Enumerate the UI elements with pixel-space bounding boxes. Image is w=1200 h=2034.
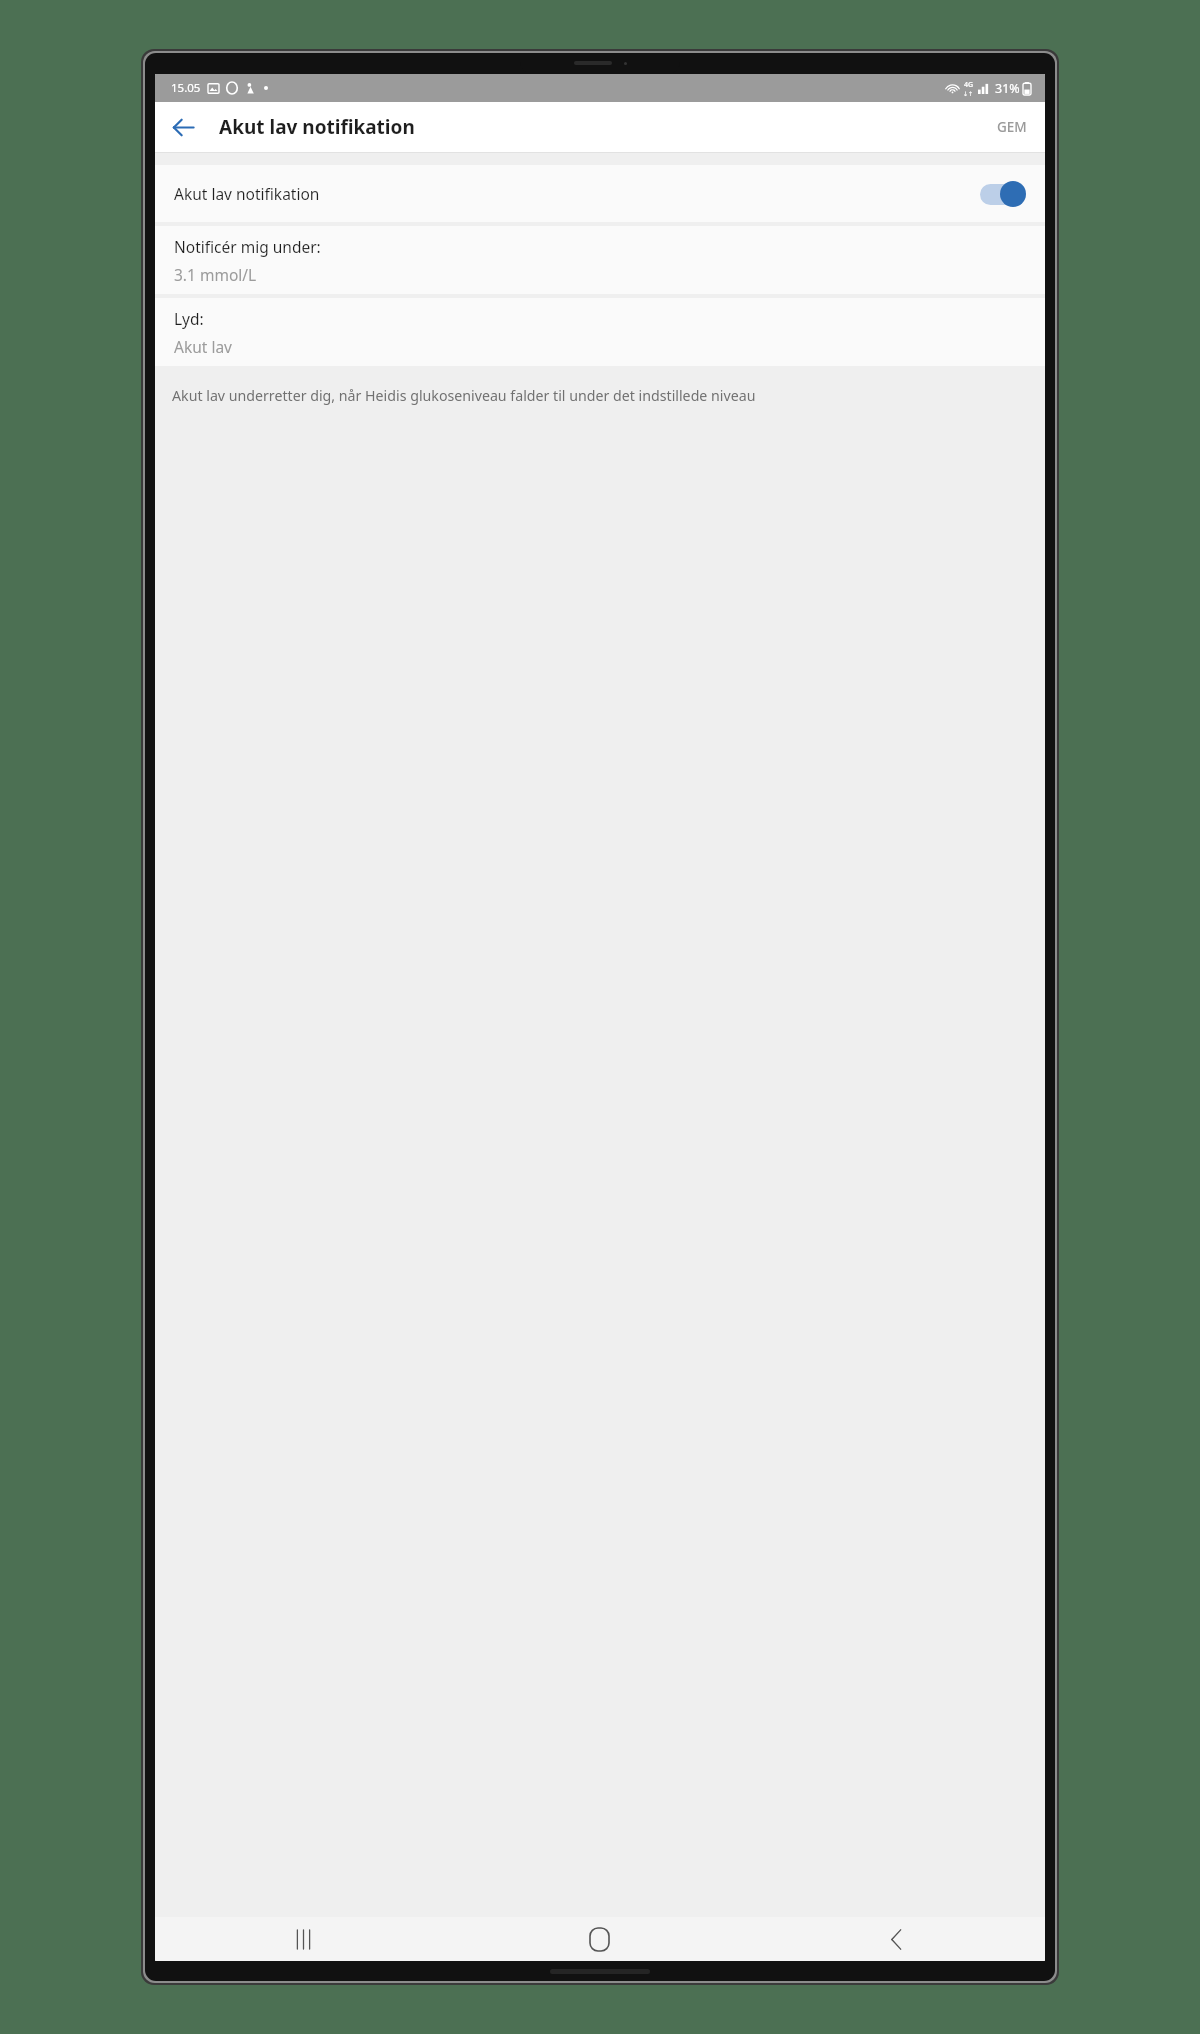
staticText: Notificér mig under:: [174, 236, 321, 257]
staticText: 4G: [964, 80, 974, 90]
staticText: ↓↑: [963, 90, 974, 97]
staticText: Akut lav notifikation: [174, 183, 320, 204]
button[interactable]: Akut lav notifikation: [155, 165, 1045, 222]
staticText: 31%: [995, 80, 1020, 97]
button[interactable]: Lyd:: [155, 298, 1045, 366]
staticText: Akut lav notifikation: [219, 114, 979, 140]
staticText: 3.1 mmol/L: [174, 264, 257, 285]
staticText: Lyd:: [174, 308, 204, 329]
button[interactable]: Recents: [155, 1917, 451, 1961]
staticText: Akut lav: [174, 336, 232, 357]
button[interactable]: Home: [451, 1917, 748, 1961]
button[interactable]: Akut lav notifikation toggle: [980, 181, 1026, 207]
staticText: Akut lav underretter dig, når Heidis glu…: [172, 386, 1011, 405]
staticText: GEM: [997, 118, 1027, 136]
staticText: 15.05: [171, 80, 201, 96]
button[interactable]: Back: [748, 1917, 1045, 1961]
button[interactable]: GEM: [979, 102, 1045, 152]
button[interactable]: Notificér mig under:: [155, 226, 1045, 294]
button[interactable]: Back: [155, 102, 211, 152]
